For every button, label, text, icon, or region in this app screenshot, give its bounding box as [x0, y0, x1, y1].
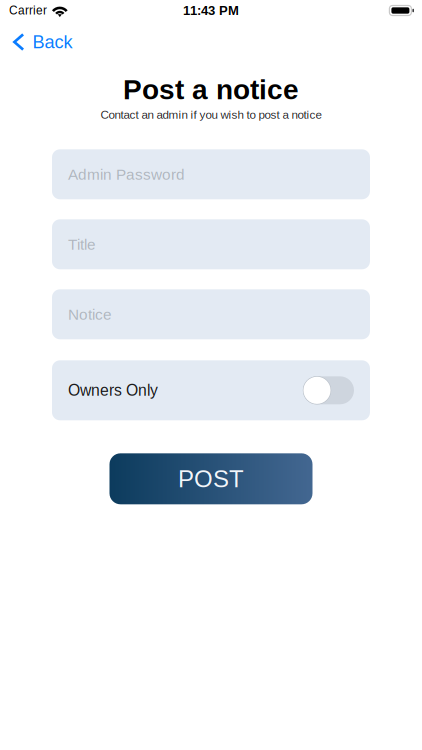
staticText: Notice — [68, 306, 112, 323]
button[interactable]: POST — [109, 453, 312, 504]
staticText: Back — [32, 32, 72, 52]
staticText: Owners Only — [68, 381, 158, 399]
button[interactable]: Admin Password — [52, 149, 370, 199]
button[interactable]: Title — [52, 219, 370, 269]
staticText: 11:43 PM — [183, 3, 239, 18]
staticText: Carrier — [9, 4, 47, 17]
button[interactable]: Owners Only — [52, 360, 370, 420]
staticText: Admin Password — [68, 166, 185, 183]
button[interactable]: Back — [0, 22, 84, 58]
button[interactable]: Notice — [52, 289, 370, 339]
staticText: Title — [68, 236, 96, 253]
staticText: POST — [178, 465, 244, 492]
staticText: Post a notice — [123, 74, 299, 105]
staticText: Contact an admin if you wish to post a n… — [100, 108, 321, 121]
